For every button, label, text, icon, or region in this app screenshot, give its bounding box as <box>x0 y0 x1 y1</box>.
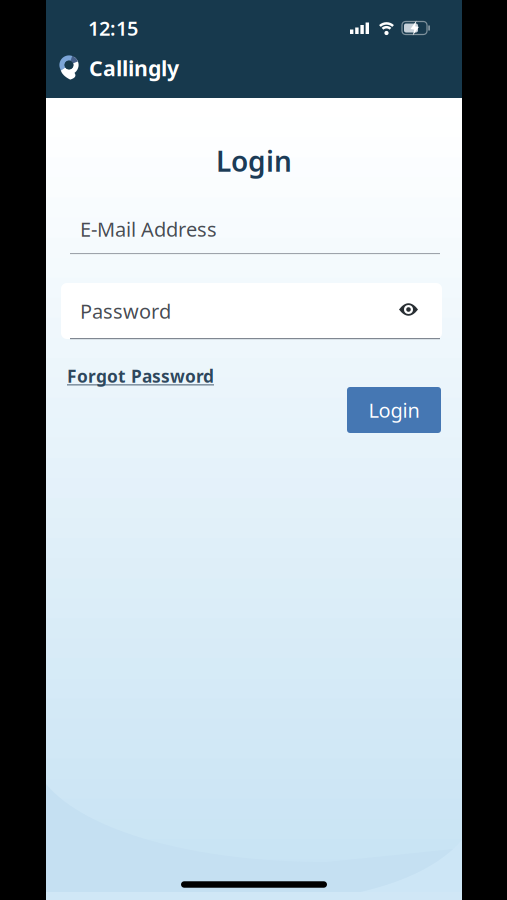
staticText: Password <box>80 298 171 324</box>
staticText: Login <box>368 397 419 423</box>
staticText: 12:15 <box>88 15 138 41</box>
staticText: E-Mail Address <box>80 216 217 242</box>
button[interactable]: Login <box>347 387 441 433</box>
button[interactable]: E-Mail Address <box>61 201 442 257</box>
button[interactable]: Password <box>61 283 442 339</box>
staticText: Forgot Password <box>67 364 214 387</box>
staticText: Login <box>216 142 292 180</box>
button[interactable]: Show password <box>398 302 418 317</box>
button[interactable]: Forgot Password <box>67 364 214 387</box>
staticText: Callingly <box>89 54 179 82</box>
